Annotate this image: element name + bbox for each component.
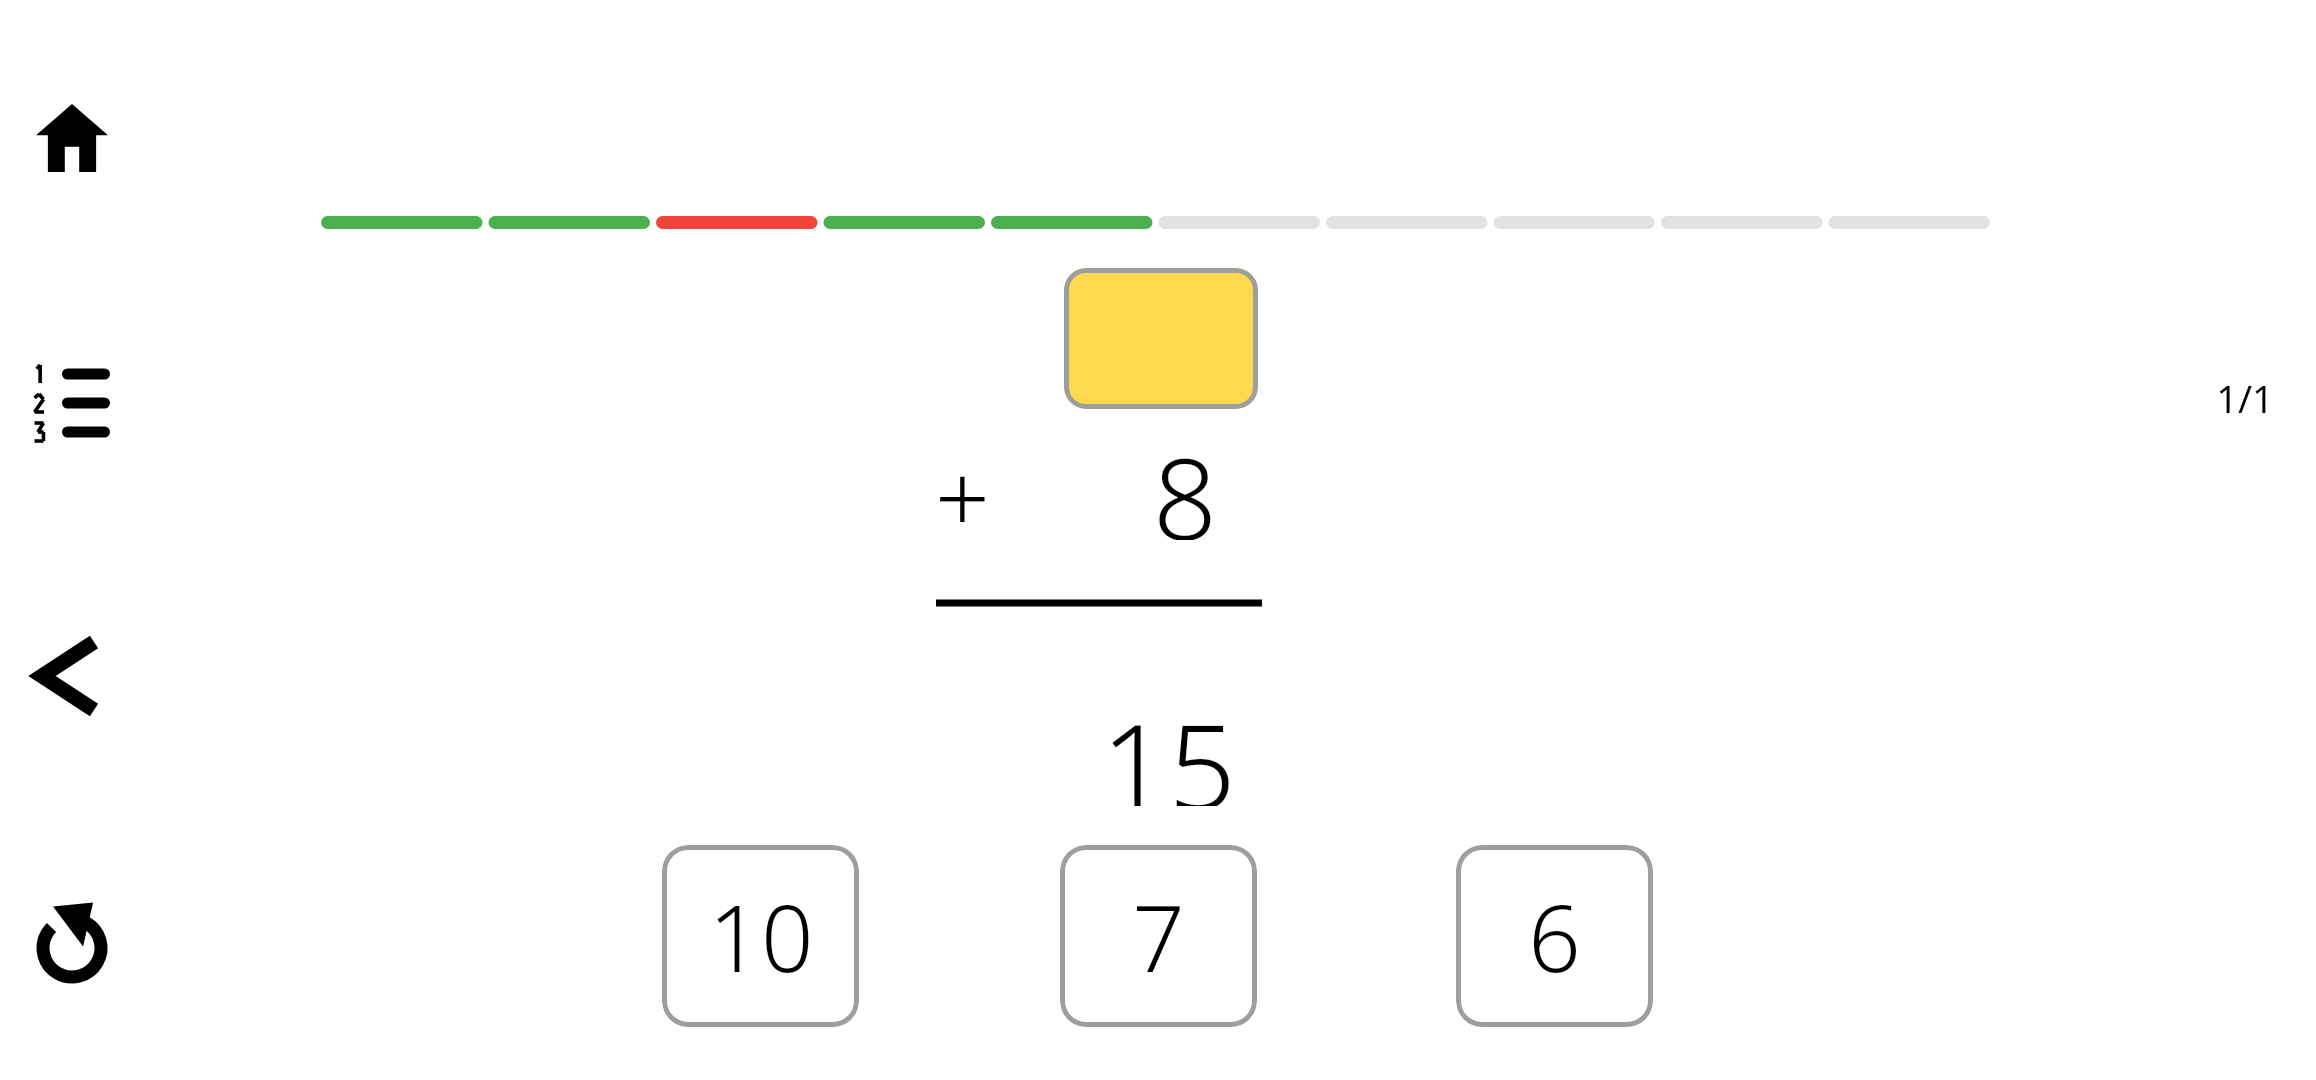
staticText: 10 (708, 874, 814, 999)
button[interactable]: 7 (1060, 845, 1257, 1027)
button[interactable]: 6 (1456, 845, 1653, 1027)
staticText: 15 (1101, 684, 1236, 806)
staticText: 6 (1528, 874, 1581, 999)
button[interactable]: Number list (10, 344, 130, 464)
button[interactable]: Restart (12, 888, 132, 1008)
button[interactable]: Home (12, 78, 132, 198)
button[interactable]: Missing number slot (1064, 268, 1258, 409)
staticText: + (935, 430, 990, 548)
button[interactable]: 10 (662, 845, 859, 1027)
staticText: 7 (1132, 874, 1185, 999)
staticText: 8 (1153, 420, 1217, 540)
staticText: 1/1 (2216, 372, 2274, 424)
button[interactable]: Back (6, 616, 126, 736)
